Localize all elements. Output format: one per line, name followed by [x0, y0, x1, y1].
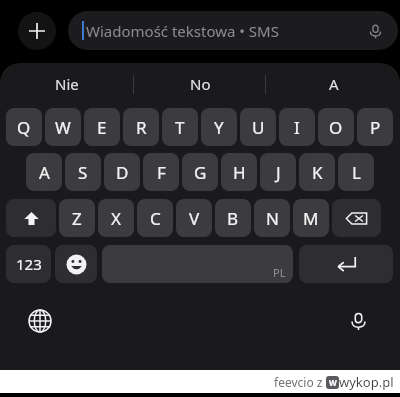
staticText: No: [190, 74, 211, 94]
button[interactable]: Backspace: [332, 199, 381, 237]
button[interactable]: K: [299, 153, 335, 191]
button[interactable]: A: [267, 63, 400, 105]
button[interactable]: X: [98, 199, 134, 237]
staticText: X: [111, 207, 121, 230]
button[interactable]: Q: [6, 108, 42, 146]
staticText: H: [233, 161, 246, 184]
staticText: K: [312, 161, 323, 184]
button[interactable]: H: [221, 153, 257, 191]
button[interactable]: No: [134, 63, 267, 105]
staticText: PL: [273, 265, 286, 280]
button[interactable]: Wiadomość tekstowa • SMS: [68, 11, 398, 50]
staticText: L: [352, 161, 361, 184]
staticText: wykop.pl: [339, 373, 394, 391]
staticText: feevcio z: [274, 374, 326, 390]
button[interactable]: Add attachment: [18, 12, 56, 50]
staticText: T: [175, 116, 185, 139]
staticText: Q: [17, 116, 31, 139]
button[interactable]: D: [104, 153, 140, 191]
button[interactable]: E: [84, 108, 120, 146]
staticText: W: [55, 116, 71, 139]
staticText: V: [189, 207, 200, 230]
staticText: W: [329, 377, 337, 388]
button[interactable]: F: [143, 153, 179, 191]
staticText: A: [329, 74, 339, 94]
staticText: P: [370, 116, 381, 139]
button[interactable]: C: [137, 199, 173, 237]
button[interactable]: R: [123, 108, 159, 146]
button[interactable]: Emoji: [55, 245, 97, 283]
staticText: N: [266, 207, 279, 230]
staticText: S: [78, 161, 88, 184]
button[interactable]: O: [318, 108, 354, 146]
button[interactable]: I: [279, 108, 315, 146]
staticText: 123: [16, 254, 42, 274]
staticText: F: [157, 161, 166, 184]
staticText: J: [276, 161, 281, 184]
button[interactable]: Z: [59, 199, 95, 237]
staticText: D: [116, 161, 129, 184]
staticText: E: [97, 116, 107, 139]
staticText: Nie: [55, 74, 79, 94]
staticText: Wiadomość tekstowa • SMS: [86, 21, 279, 41]
staticText: R: [136, 116, 147, 139]
button[interactable]: N: [254, 199, 290, 237]
button[interactable]: G: [182, 153, 218, 191]
button[interactable]: Voice input: [360, 16, 390, 46]
button[interactable]: Space: [102, 245, 293, 283]
staticText: G: [194, 161, 207, 184]
staticText: Z: [72, 207, 82, 230]
button[interactable]: Change language: [22, 303, 58, 339]
button[interactable]: Y: [201, 108, 237, 146]
staticText: I: [294, 116, 300, 139]
staticText: C: [150, 207, 161, 230]
staticText: M: [303, 207, 319, 230]
button[interactable]: Shift: [6, 199, 56, 237]
button[interactable]: L: [338, 153, 374, 191]
button[interactable]: J: [260, 153, 296, 191]
button[interactable]: S: [65, 153, 101, 191]
button[interactable]: U: [240, 108, 276, 146]
button[interactable]: P: [357, 108, 393, 146]
staticText: Y: [214, 116, 224, 139]
button[interactable]: B: [215, 199, 251, 237]
staticText: A: [39, 161, 50, 184]
button[interactable]: A: [26, 153, 62, 191]
button[interactable]: Voice typing: [340, 303, 376, 339]
staticText: B: [227, 207, 239, 230]
staticText: O: [329, 116, 343, 139]
button[interactable]: 123: [6, 245, 51, 283]
staticText: U: [252, 116, 265, 139]
button[interactable]: Enter: [299, 245, 393, 283]
button[interactable]: W: [45, 108, 81, 146]
button[interactable]: Nie: [0, 63, 134, 105]
button[interactable]: T: [162, 108, 198, 146]
button[interactable]: M: [293, 199, 329, 237]
button[interactable]: V: [176, 199, 212, 237]
